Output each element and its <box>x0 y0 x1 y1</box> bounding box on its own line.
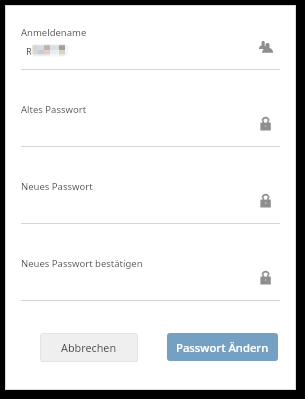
button[interactable]: Choose user <box>259 40 277 58</box>
staticText: Abbrechen <box>61 340 117 355</box>
staticText: Altes Passwort <box>21 103 87 116</box>
staticText: Anmeldename <box>21 26 87 39</box>
staticText: Neues Passwort <box>21 180 93 193</box>
staticText: Passwort Ändern <box>176 340 269 355</box>
button[interactable]: Password field <box>259 117 277 135</box>
button[interactable]: Abbrechen <box>40 333 138 362</box>
staticText: Neues Passwort bestätigen <box>21 257 143 270</box>
button[interactable]: Password field <box>259 271 277 289</box>
staticText: R <box>26 45 32 58</box>
button[interactable]: Passwort Ändern <box>167 333 278 361</box>
button[interactable]: Password field <box>259 194 277 212</box>
